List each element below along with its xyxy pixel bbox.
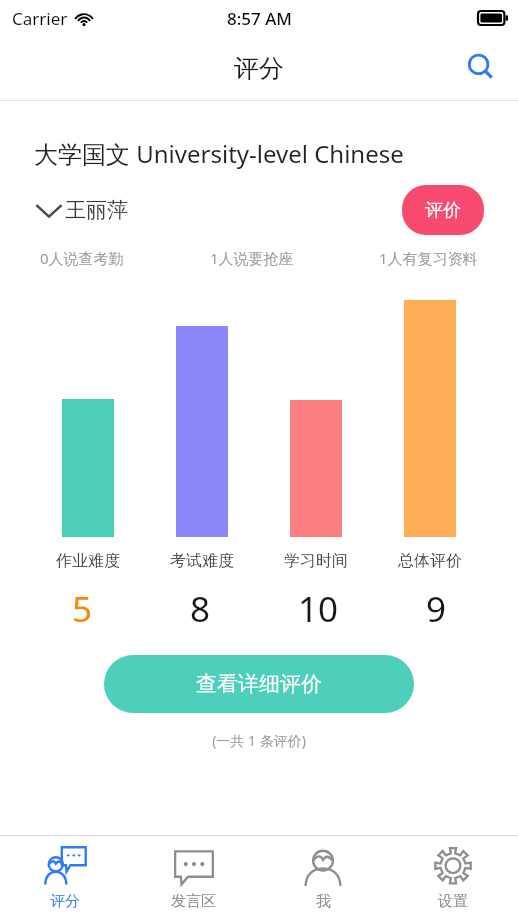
button[interactable]: 我 bbox=[258, 836, 388, 920]
staticText: 5 bbox=[72, 585, 93, 633]
staticText: 大学国文 University-level Chinese bbox=[34, 137, 404, 170]
staticText: (一共 1 条评价) bbox=[0, 731, 518, 750]
staticText: 我 bbox=[316, 892, 331, 911]
staticText: 8 bbox=[190, 585, 211, 633]
staticText: 考试难度 bbox=[170, 551, 234, 571]
staticText: 评分 bbox=[234, 53, 284, 84]
button[interactable]: 发言区 bbox=[129, 836, 258, 920]
button[interactable]: 查看详细评价 bbox=[104, 655, 414, 713]
staticText: 设置 bbox=[438, 892, 468, 911]
staticText: 9 bbox=[426, 585, 447, 633]
staticText: 8:57 AM bbox=[227, 7, 292, 30]
staticText: 学习时间 bbox=[284, 551, 348, 571]
staticText: 评价 bbox=[425, 199, 461, 222]
button[interactable]: 评分 bbox=[0, 836, 129, 920]
staticText: 作业难度 bbox=[56, 551, 120, 571]
staticText: 0人说查考勤 bbox=[40, 248, 124, 268]
button[interactable]: 王丽萍 bbox=[34, 197, 128, 223]
staticText: 发言区 bbox=[171, 892, 216, 911]
button[interactable]: Search bbox=[458, 45, 504, 91]
staticText: 评分 bbox=[50, 892, 80, 911]
staticText: 10 bbox=[298, 585, 339, 633]
staticText: 1人说要抢座 bbox=[210, 248, 294, 268]
button[interactable]: 评价 bbox=[402, 185, 484, 235]
button[interactable]: 设置 bbox=[388, 836, 518, 920]
staticText: 总体评价 bbox=[398, 551, 462, 571]
staticText: 1人有复习资料 bbox=[379, 248, 478, 268]
staticText: Carrier bbox=[12, 7, 68, 30]
staticText: 查看详细评价 bbox=[196, 671, 322, 697]
staticText: 王丽萍 bbox=[65, 197, 128, 223]
